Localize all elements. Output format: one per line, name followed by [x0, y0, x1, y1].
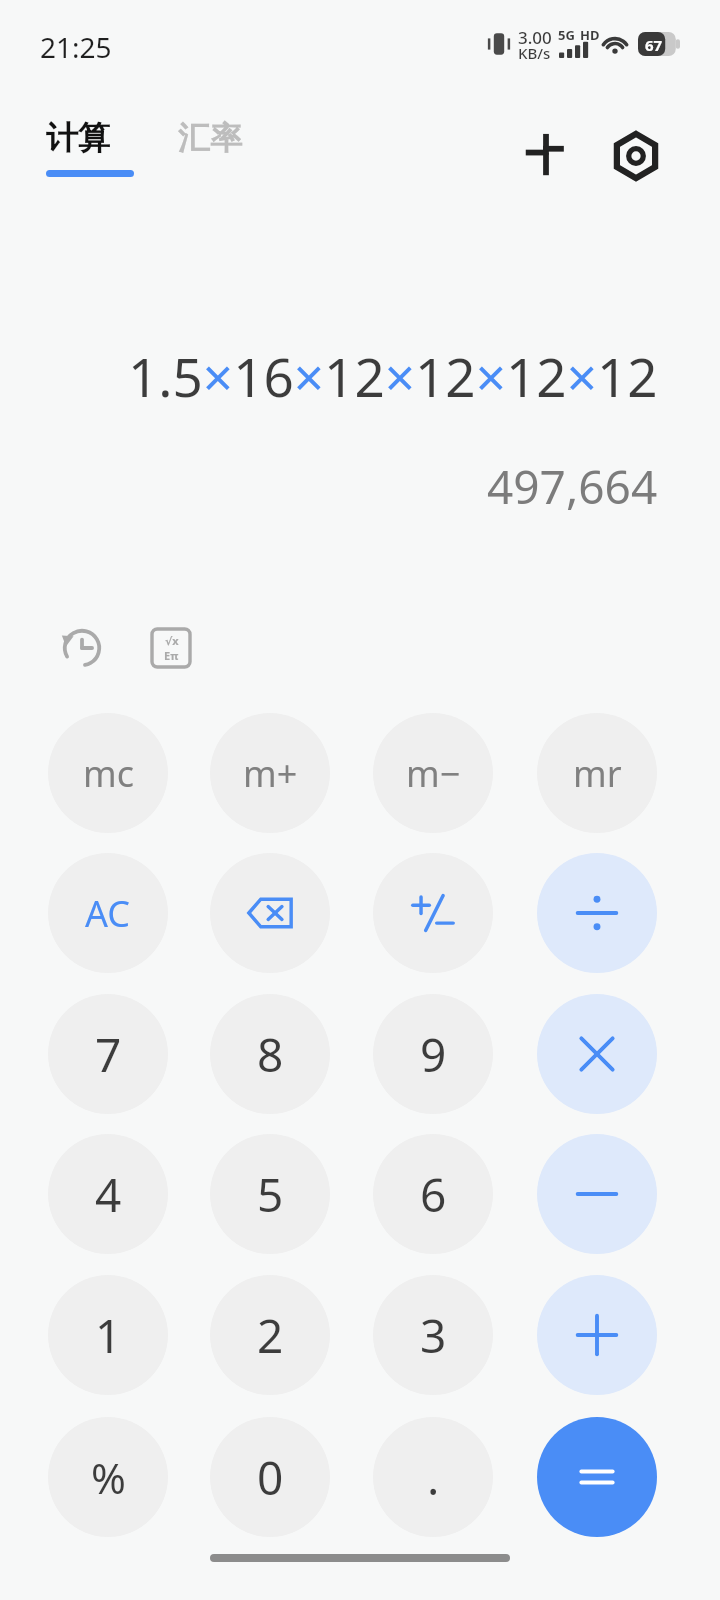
- button[interactable]: %: [48, 1417, 168, 1537]
- button[interactable]: AC: [48, 853, 168, 973]
- button[interactable]: 0: [210, 1417, 330, 1537]
- button[interactable]: Divide: [537, 853, 657, 973]
- button[interactable]: History: [48, 614, 116, 682]
- staticText: 0: [257, 1446, 284, 1509]
- staticText: KB/s: [518, 43, 551, 63]
- button[interactable]: 4: [48, 1134, 168, 1254]
- staticText: 3: [420, 1304, 447, 1367]
- staticText: 2: [257, 1304, 284, 1367]
- button[interactable]: Plus minus sign: [373, 853, 493, 973]
- button[interactable]: mr: [537, 713, 657, 833]
- button[interactable]: 7: [48, 994, 168, 1114]
- button[interactable]: 汇率: [170, 118, 270, 174]
- staticText: √x: [165, 633, 179, 648]
- button[interactable]: m+: [210, 713, 330, 833]
- button[interactable]: 1: [48, 1275, 168, 1395]
- button[interactable]: Minus: [537, 1134, 657, 1254]
- button[interactable]: 计算: [40, 118, 140, 188]
- button[interactable]: 8: [210, 994, 330, 1114]
- staticText: 6: [420, 1163, 447, 1226]
- staticText: Eπ: [164, 648, 179, 663]
- staticText: AC: [85, 889, 131, 938]
- staticText: m−: [406, 749, 461, 798]
- button[interactable]: Backspace: [210, 853, 330, 973]
- staticText: 4: [95, 1163, 122, 1226]
- staticText: 9: [420, 1023, 447, 1086]
- staticText: 汇率: [178, 118, 242, 158]
- button[interactable]: 2: [210, 1275, 330, 1395]
- staticText: HD: [580, 26, 600, 44]
- button[interactable]: 6: [373, 1134, 493, 1254]
- button[interactable]: 9: [373, 994, 493, 1114]
- staticText: 21:25: [40, 28, 112, 66]
- button[interactable]: Settings: [598, 118, 674, 194]
- staticText: 67: [645, 35, 663, 55]
- staticText: 1: [95, 1304, 122, 1367]
- button[interactable]: .: [373, 1417, 493, 1537]
- staticText: m+: [243, 749, 298, 798]
- button[interactable]: Multiply: [537, 994, 657, 1114]
- staticText: 5G: [558, 26, 575, 44]
- button[interactable]: Equals: [537, 1417, 657, 1537]
- button[interactable]: Plus: [537, 1275, 657, 1395]
- staticText: 1.5×16×12×12×12×12: [128, 340, 658, 412]
- button[interactable]: Scientific keypad: [508, 118, 584, 194]
- staticText: 497,664: [487, 455, 658, 518]
- staticText: 8: [257, 1023, 284, 1086]
- staticText: 3.00: [518, 26, 552, 49]
- staticText: %: [91, 1449, 126, 1506]
- button[interactable]: 5: [210, 1134, 330, 1254]
- button[interactable]: m−: [373, 713, 493, 833]
- staticText: mr: [573, 749, 622, 798]
- button[interactable]: Scientific functions: [137, 614, 205, 682]
- button[interactable]: 3: [373, 1275, 493, 1395]
- staticText: .: [427, 1446, 440, 1509]
- staticText: 7: [95, 1023, 122, 1086]
- staticText: 计算: [46, 118, 110, 158]
- staticText: mc: [83, 749, 134, 798]
- staticText: 5: [257, 1163, 284, 1226]
- button[interactable]: mc: [48, 713, 168, 833]
